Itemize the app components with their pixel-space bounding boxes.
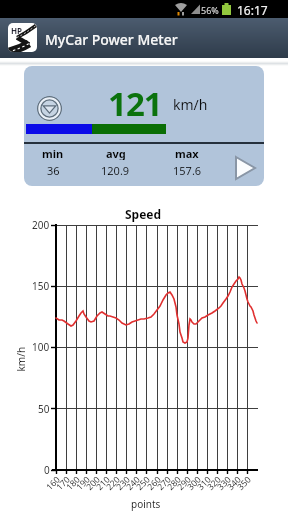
staticText: HP	[11, 25, 23, 36]
staticText: points	[131, 497, 161, 511]
staticText: avg	[106, 146, 126, 160]
staticText: 36	[47, 163, 60, 177]
staticText: MyCar Power Meter	[45, 30, 178, 49]
staticText: Speed	[125, 206, 162, 222]
staticText: km/h	[173, 95, 208, 114]
staticText: 150	[32, 279, 50, 293]
staticText: 50	[38, 402, 50, 416]
staticText: min	[42, 146, 64, 160]
staticText: 100	[32, 340, 50, 354]
staticText: 56%	[201, 4, 219, 16]
staticText: 16:17	[237, 2, 268, 18]
staticText: 120.9	[101, 163, 130, 177]
staticText: 121	[108, 81, 162, 126]
staticText: km/h	[13, 346, 27, 371]
staticText: 0	[44, 463, 50, 477]
button[interactable]	[234, 156, 258, 180]
button[interactable]: HP	[0, 18, 288, 58]
button[interactable]	[37, 96, 62, 121]
staticText: 157.6	[173, 163, 202, 177]
staticText: 200	[32, 218, 50, 232]
staticText: max	[175, 146, 199, 160]
